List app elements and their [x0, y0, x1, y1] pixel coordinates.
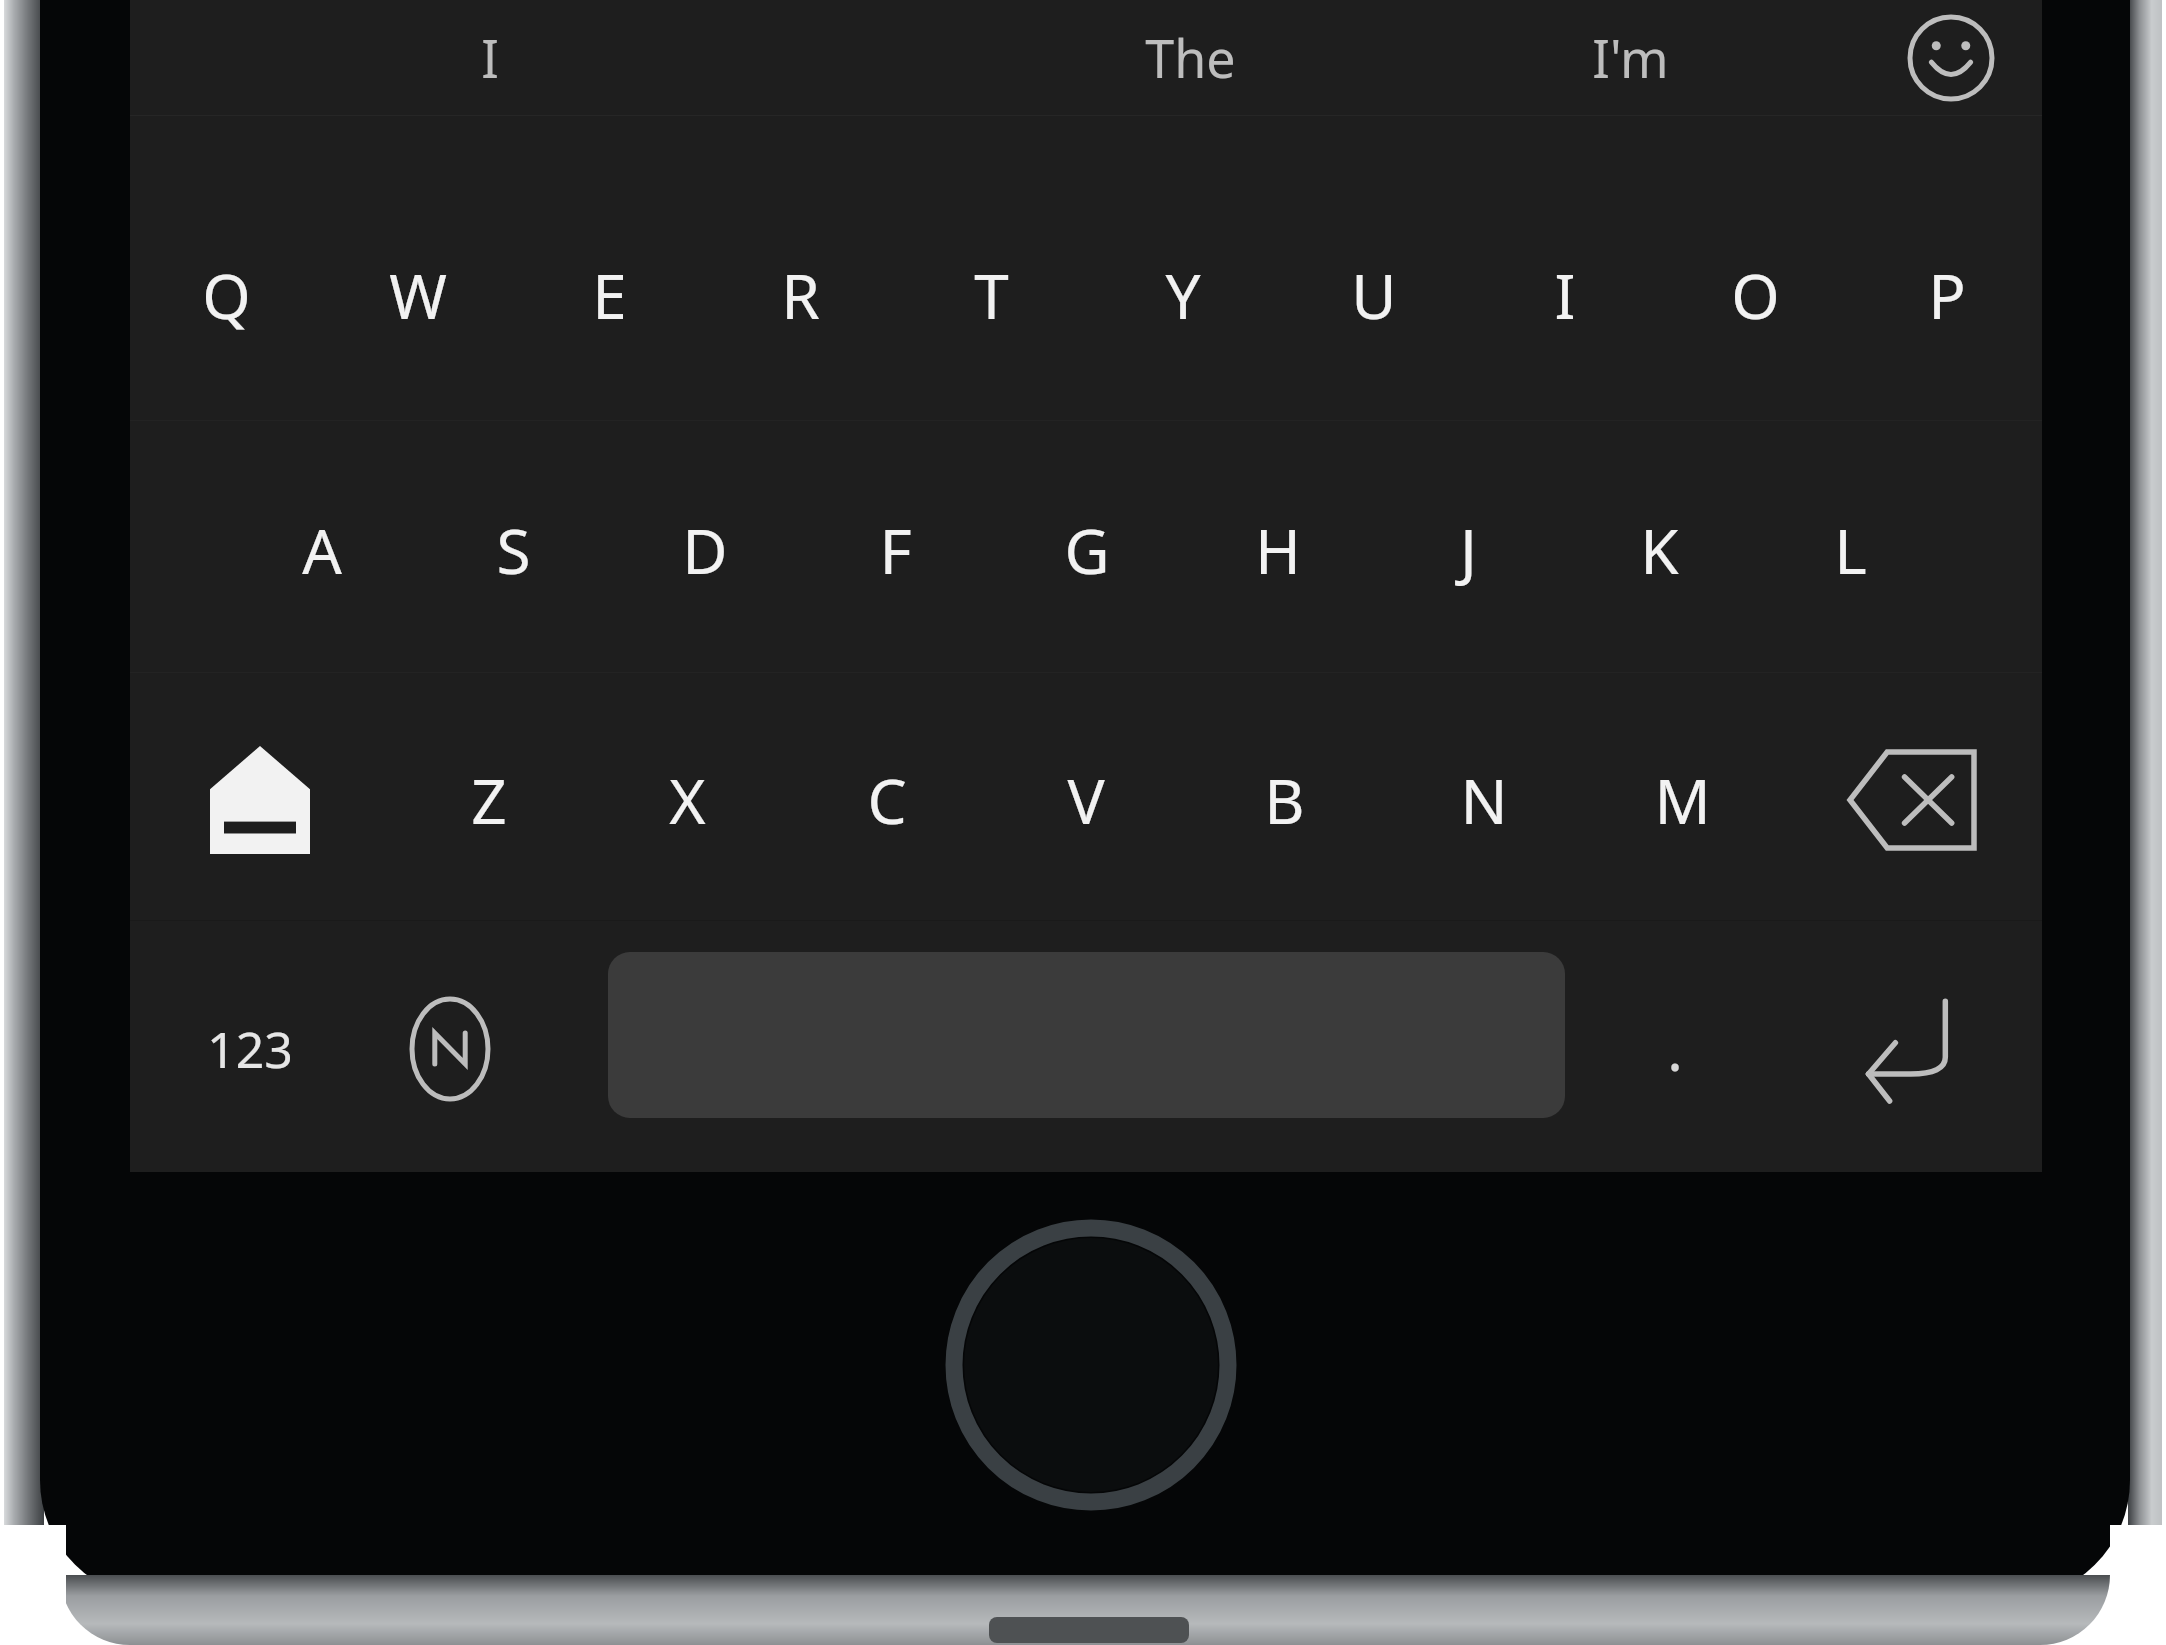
button[interactable]: W — [322, 175, 514, 415]
staticText: Z — [471, 758, 507, 842]
staticText: X — [669, 758, 706, 842]
staticText: T — [974, 253, 1009, 337]
button[interactable]: Z — [390, 680, 588, 920]
staticText: F — [879, 508, 912, 592]
staticText: . — [1667, 1009, 1683, 1088]
staticText: Y — [1165, 253, 1201, 337]
button[interactable]: Emoji keyboard — [1860, 0, 2042, 115]
button[interactable]: Y — [1087, 175, 1278, 415]
button[interactable]: 123 — [160, 925, 340, 1172]
staticText: R — [781, 253, 820, 337]
button[interactable]: O — [1660, 175, 1851, 415]
button[interactable]: C — [787, 680, 986, 920]
staticText: B — [1264, 758, 1305, 842]
staticText: I — [481, 22, 499, 93]
button[interactable]: H — [1182, 430, 1373, 670]
button[interactable]: Backspace — [1782, 680, 2042, 920]
staticText: H — [1255, 508, 1301, 592]
staticText: J — [1460, 508, 1477, 592]
staticText: D — [682, 508, 728, 592]
staticText: L — [1834, 508, 1867, 592]
staticText: M — [1654, 758, 1711, 842]
button[interactable]: Home — [948, 1222, 1234, 1508]
button[interactable]: I — [1469, 175, 1660, 415]
button[interactable]: The — [960, 0, 1420, 115]
button[interactable]: I'm — [1430, 0, 1830, 115]
staticText: The — [1145, 22, 1236, 93]
button[interactable]: A — [226, 430, 418, 670]
button[interactable]: Enter — [1790, 925, 2020, 1172]
staticText: P — [1928, 253, 1966, 337]
button[interactable]: B — [1185, 680, 1384, 920]
button[interactable]: S — [418, 430, 609, 670]
staticText: W — [389, 253, 447, 337]
button[interactable]: U — [1278, 175, 1469, 415]
staticText: S — [496, 508, 531, 592]
button[interactable]: L — [1755, 430, 1946, 670]
staticText: U — [1351, 253, 1397, 337]
button[interactable]: K — [1564, 430, 1755, 670]
button[interactable]: N — [1384, 680, 1583, 920]
button[interactable]: D — [609, 430, 800, 670]
button[interactable]: . — [1590, 925, 1760, 1172]
staticText: I'm — [1592, 22, 1669, 93]
staticText: A — [302, 508, 342, 592]
button[interactable]: J — [1373, 430, 1564, 670]
staticText: O — [1731, 253, 1780, 337]
staticText: N — [1460, 758, 1508, 842]
staticText: C — [867, 758, 907, 842]
button[interactable]: E — [514, 175, 705, 415]
button[interactable]: Q — [130, 175, 322, 415]
button[interactable]: G — [991, 430, 1182, 670]
button[interactable]: R — [705, 175, 896, 415]
staticText: E — [592, 253, 627, 337]
staticText: K — [1640, 508, 1679, 592]
button[interactable]: V — [986, 680, 1185, 920]
button[interactable]: I — [260, 0, 720, 115]
button[interactable]: Gesture typing — [360, 925, 540, 1172]
button[interactable]: P — [1851, 175, 2042, 415]
staticText: V — [1067, 758, 1105, 842]
staticText: 123 — [207, 1015, 293, 1083]
staticText: I — [1554, 253, 1576, 337]
staticText: G — [1064, 508, 1110, 592]
button[interactable]: Shift — [130, 680, 390, 920]
button[interactable]: X — [588, 680, 787, 920]
button[interactable]: T — [896, 175, 1087, 415]
button[interactable]: M — [1583, 680, 1782, 920]
staticText: Q — [202, 253, 251, 337]
button[interactable]: F — [800, 430, 991, 670]
